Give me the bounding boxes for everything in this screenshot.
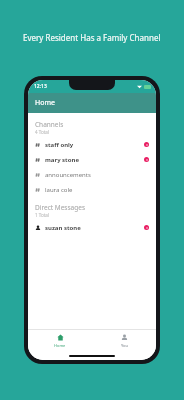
staticText: Home bbox=[35, 98, 55, 108]
button[interactable]: laura cole bbox=[28, 182, 156, 197]
staticText: suzan stone bbox=[45, 224, 81, 232]
staticText: 12:13 bbox=[34, 83, 47, 90]
staticText: laura cole bbox=[45, 186, 73, 194]
staticText: 1 Total bbox=[35, 212, 49, 218]
button[interactable]: mary stone bbox=[28, 152, 156, 167]
staticText: Every Resident Has a Family Channel bbox=[23, 32, 161, 43]
button[interactable]: Home bbox=[28, 334, 92, 348]
staticText: Channels bbox=[35, 120, 64, 129]
button[interactable]: announcements bbox=[28, 167, 156, 182]
staticText: Direct Messages bbox=[35, 203, 86, 212]
button[interactable]: staff only bbox=[28, 137, 156, 152]
staticText: staff only bbox=[45, 141, 74, 149]
staticText: Home bbox=[54, 343, 66, 348]
staticText: announcements bbox=[45, 171, 91, 179]
staticText: 4 Total bbox=[35, 129, 49, 135]
button[interactable]: You bbox=[92, 334, 156, 348]
staticText: You bbox=[121, 343, 128, 348]
button[interactable]: suzan stone bbox=[28, 220, 156, 235]
staticText: mary stone bbox=[45, 156, 79, 164]
